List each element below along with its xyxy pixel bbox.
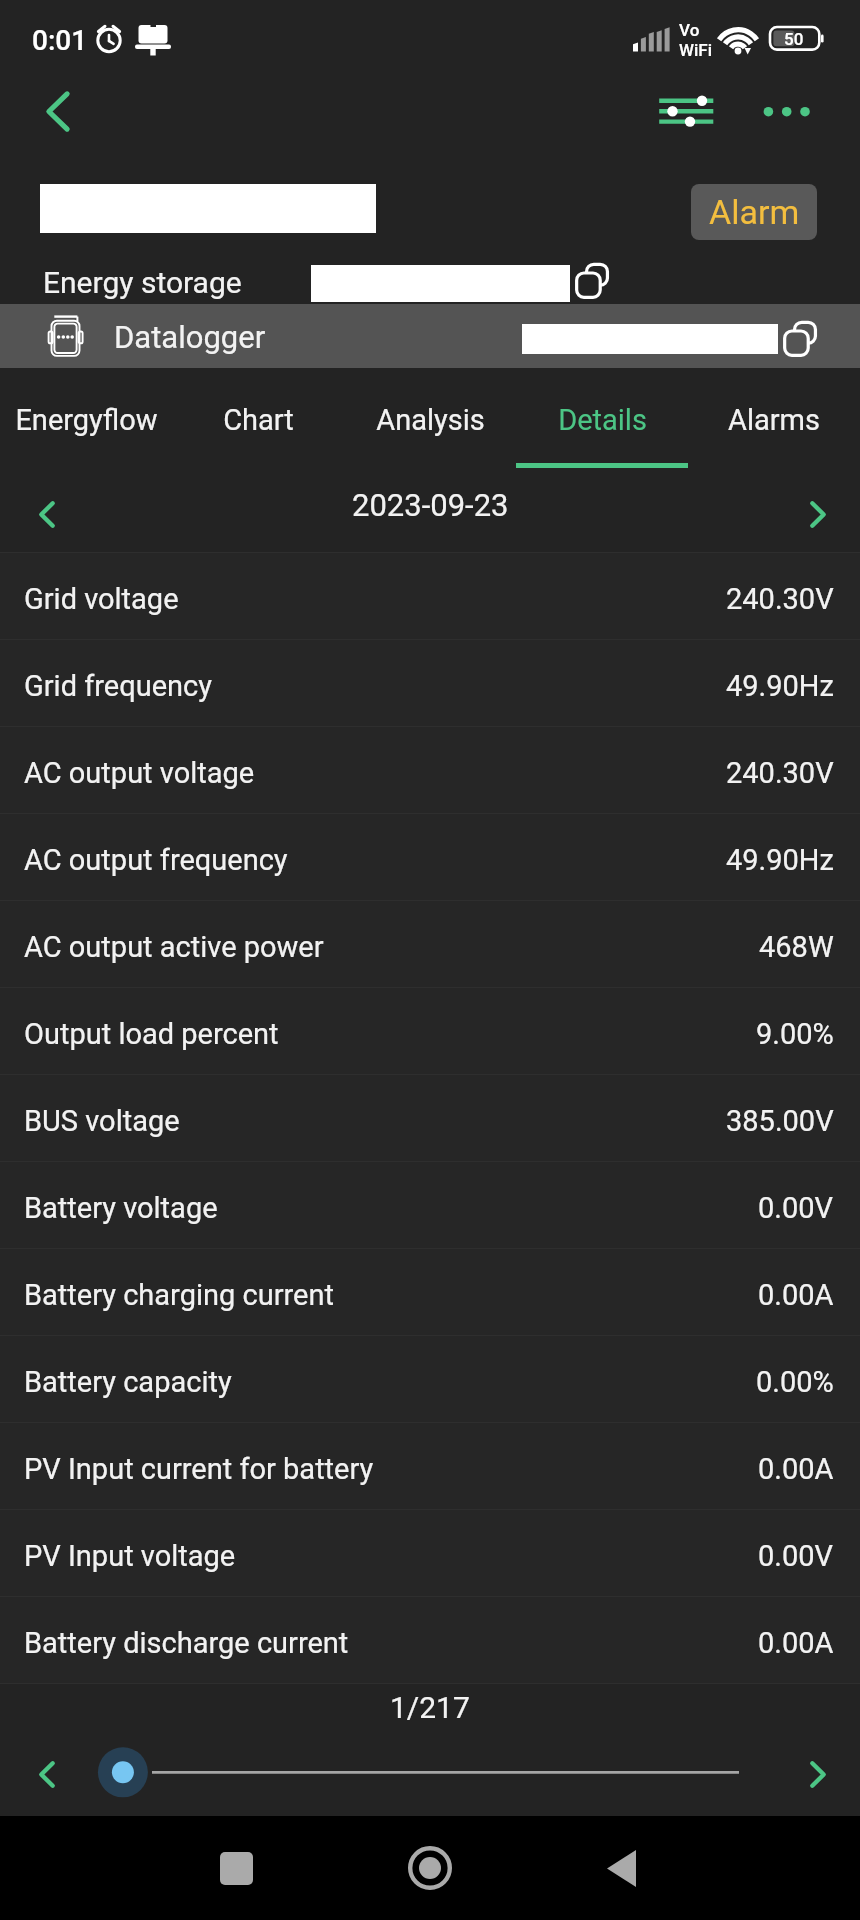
button[interactable]: Page slider [86,1743,774,1803]
staticText: Battery voltage [24,1191,218,1225]
button[interactable]: Back [553,1816,689,1920]
button[interactable]: PV Input voltage [0,1510,860,1596]
button[interactable]: Copy datalogger id [782,320,820,358]
button[interactable]: Recent apps [168,1816,304,1920]
button[interactable]: Next day [787,483,849,545]
staticText: PV Input current for battery [24,1452,374,1486]
button[interactable]: Back [24,77,92,145]
button[interactable]: Details [516,370,688,478]
button[interactable]: Battery voltage [0,1162,860,1248]
button[interactable]: PV Input current for battery [0,1423,860,1509]
staticText: 0.00V [758,1539,834,1573]
staticText: 50 [784,29,804,49]
staticText: Energyflow [15,403,158,437]
staticText: 49.90Hz [726,843,834,877]
button[interactable]: Battery discharge current [0,1597,860,1683]
staticText: 0.00A [758,1278,834,1312]
staticText: Battery capacity [24,1365,232,1399]
staticText: Battery charging current [24,1278,334,1312]
button[interactable]: Grid voltage [0,553,860,639]
staticText: 0.00A [758,1626,834,1660]
button[interactable]: Alarms [688,370,860,478]
button[interactable]: BUS voltage [0,1075,860,1161]
button[interactable]: AC output voltage [0,727,860,813]
staticText: Chart [223,403,294,437]
staticText: 0.00V [758,1191,834,1225]
staticText: 9.00% [756,1017,834,1051]
staticText: Alarm [709,192,800,232]
staticText: 468W [759,930,834,964]
button[interactable]: Output load percent [0,988,860,1074]
staticText: Details [558,403,647,437]
staticText: 49.90Hz [726,669,834,703]
staticText: WiFi [679,40,713,60]
button[interactable]: Energyflow [0,370,172,478]
staticText: 2023-09-23 [352,487,509,523]
staticText: Output load percent [24,1017,279,1051]
button[interactable]: AC output frequency [0,814,860,900]
button[interactable]: Copy serial number [574,262,612,300]
staticText: Analysis [376,403,485,437]
staticText: AC output frequency [24,843,288,877]
staticText: Alarms [728,403,820,437]
button[interactable]: Home [362,1816,498,1920]
button[interactable]: Next page [787,1743,849,1805]
button[interactable]: More options [752,82,822,140]
button[interactable]: Battery charging current [0,1249,860,1335]
button[interactable]: Alarm [691,184,817,240]
button[interactable]: Chart [172,370,344,478]
button[interactable]: Energy storage [36,258,254,308]
button[interactable]: Battery capacity [0,1336,860,1422]
staticText: PV Input voltage [24,1539,236,1573]
staticText: BUS voltage [24,1104,180,1138]
staticText: 1/217 [390,1690,470,1725]
button[interactable]: Analysis [344,370,516,478]
button[interactable]: Grid frequency [0,640,860,726]
staticText: Vo [679,20,700,40]
staticText: 0.00A [758,1452,834,1486]
button[interactable]: Filter settings [645,79,727,143]
staticText: AC output active power [24,930,324,964]
button[interactable]: AC output active power [0,901,860,987]
staticText: Battery discharge current [24,1626,349,1660]
staticText: 240.30V [726,756,834,790]
button[interactable]: Previous day [16,483,78,545]
staticText: Grid frequency [24,669,212,703]
button[interactable] [0,304,860,368]
staticText: Grid voltage [24,582,179,616]
staticText: 385.00V [726,1104,834,1138]
staticText: 240.30V [726,582,834,616]
staticText: Datalogger [114,319,266,355]
staticText: Energy storage [43,265,242,300]
staticText: 0:01 [32,24,88,57]
staticText: 0.00% [756,1365,834,1399]
button[interactable]: Previous page [16,1743,78,1805]
staticText: AC output voltage [24,756,255,790]
